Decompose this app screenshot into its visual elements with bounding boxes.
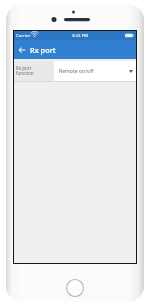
staticText: Carrier xyxy=(16,32,31,38)
staticText: Remote on/off xyxy=(59,68,94,75)
button[interactable]: Back xyxy=(13,40,30,59)
staticText: Rx port function xyxy=(16,65,34,77)
button[interactable]: Home xyxy=(65,278,85,298)
staticText: 3:12 PM xyxy=(72,32,89,38)
button[interactable]: Rx port function xyxy=(13,61,137,81)
staticText: Rx port xyxy=(30,45,56,55)
